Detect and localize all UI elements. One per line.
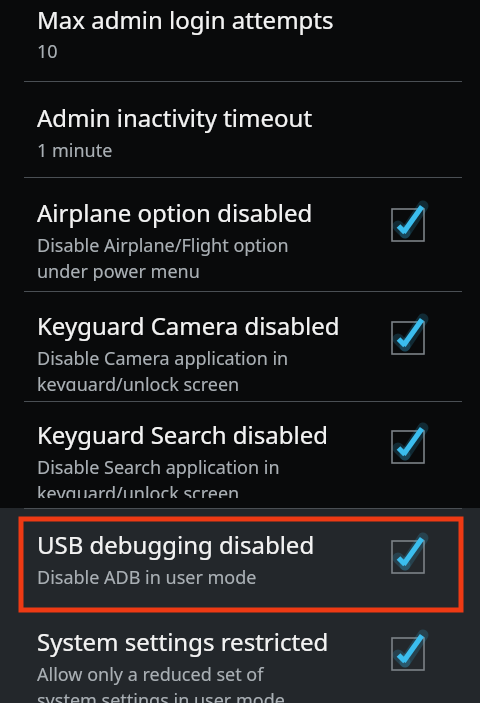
staticText: 10 — [37, 39, 58, 64]
button[interactable]: Toggle checkbox — [385, 202, 431, 248]
button[interactable]: Airplane option disabled — [0, 178, 480, 291]
staticText: Disable ADB in user mode — [37, 565, 257, 590]
staticText: Disable Search application in keyguard/u… — [37, 455, 280, 498]
staticText: Allow only a reduced set of system setti… — [37, 662, 285, 703]
button[interactable]: Toggle checkbox — [385, 315, 431, 361]
staticText: Airplane option disabled — [37, 196, 313, 229]
button[interactable]: Keyguard Camera disabled — [0, 292, 480, 401]
button[interactable]: Toggle checkbox — [385, 424, 431, 470]
staticText: Keyguard Camera disabled — [37, 309, 340, 342]
staticText: Keyguard Search disabled — [37, 418, 328, 451]
staticText: Disable Airplane/Flight option under pow… — [37, 233, 289, 281]
button[interactable]: Admin inactivity timeout — [0, 82, 480, 175]
button[interactable]: Toggle checkbox — [385, 631, 431, 677]
staticText: 1 minute — [37, 138, 113, 163]
button[interactable]: USB debugging disabled — [0, 509, 480, 604]
staticText: USB debugging disabled — [37, 528, 315, 561]
button[interactable]: Keyguard Search disabled — [0, 402, 480, 508]
staticText: Admin inactivity timeout — [37, 101, 313, 134]
button[interactable]: System settings restricted — [0, 613, 480, 703]
staticText: Max admin login attempts — [37, 3, 334, 36]
staticText: Disable Camera application in keyguard/u… — [37, 346, 289, 391]
button[interactable]: Toggle checkbox — [385, 534, 431, 580]
button[interactable]: Max admin login attempts — [0, 0, 480, 81]
staticText: System settings restricted — [37, 625, 329, 658]
